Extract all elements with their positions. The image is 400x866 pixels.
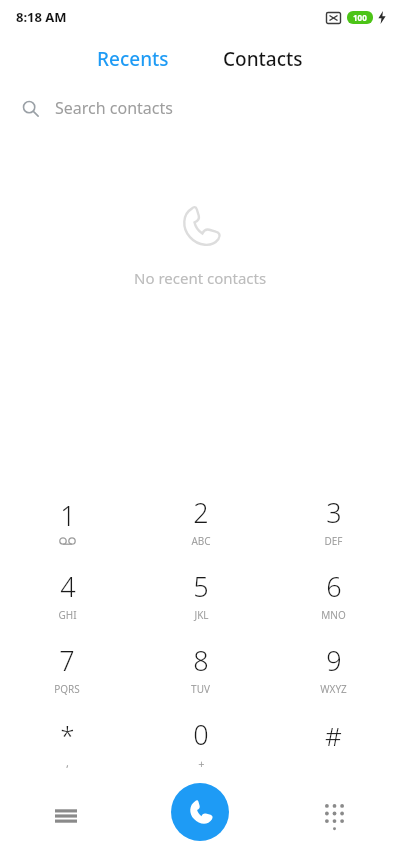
staticText: DEF [324,534,343,548]
button[interactable]: # [267,706,400,780]
staticText: 2 [193,494,209,531]
staticText: 6 [326,568,342,605]
staticText: 1 [60,497,76,534]
button[interactable]: * [0,706,134,780]
button[interactable]: Menu [44,794,88,838]
staticText: ABC [191,534,211,548]
staticText: 5 [193,568,209,605]
button[interactable]: Recents [81,38,185,80]
staticText: # [325,718,342,753]
staticText: 3 [326,494,342,531]
button[interactable]: 5 [134,558,267,632]
staticText: MNO [321,608,346,622]
button[interactable]: 0 [134,706,267,780]
staticText: PQRS [54,682,80,696]
staticText: Recents [97,46,169,72]
staticText: 7 [59,642,75,679]
staticText: GHI [58,608,77,622]
button[interactable]: Dialpad [312,794,356,838]
button[interactable]: 9 [267,632,400,706]
staticText: , [66,755,69,770]
staticText: Contacts [223,46,303,72]
staticText: 100 [353,12,367,23]
button[interactable]: 2 [134,484,267,558]
staticText: WXYZ [320,682,347,696]
staticText: 0 [193,716,209,753]
staticText: 8:18 AM [16,8,67,26]
staticText: No recent contacts [134,268,267,288]
staticText: 4 [60,568,76,605]
button[interactable]: Contacts [207,38,319,80]
staticText: 9 [326,642,342,679]
staticText: TUV [191,682,210,696]
button[interactable]: 1 [0,484,134,558]
button[interactable]: 3 [267,484,400,558]
staticText: Search contacts [55,97,173,119]
button[interactable]: 6 [267,558,400,632]
button[interactable]: Search contacts [0,84,400,132]
staticText: 8 [193,642,209,679]
button[interactable]: 7 [0,632,134,706]
staticText: * [60,717,75,752]
button[interactable]: 8 [134,632,267,706]
staticText: + [198,756,205,771]
staticText: JKL [194,608,209,622]
button[interactable]: 4 [0,558,134,632]
button[interactable]: Call [171,783,229,841]
